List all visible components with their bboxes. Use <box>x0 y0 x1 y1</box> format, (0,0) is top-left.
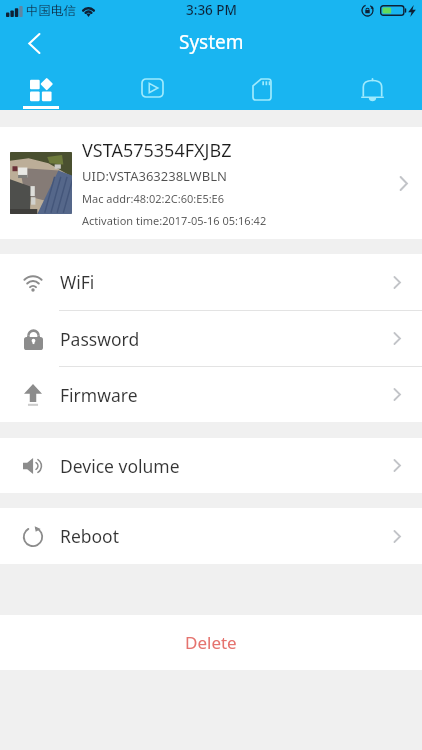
button[interactable]: WiFi <box>0 254 422 310</box>
staticText: WiFi <box>60 270 95 294</box>
button[interactable]: Delete <box>0 615 422 670</box>
staticText: UID:VSTA363238LWBLN <box>82 167 227 185</box>
button[interactable]: Reboot <box>0 508 422 564</box>
staticText: System <box>179 29 244 55</box>
staticText: Mac addr:48:02:2C:60:E5:E6 <box>82 191 225 206</box>
staticText: Password <box>60 327 140 351</box>
button[interactable]: SD card <box>221 64 303 110</box>
staticText: 中国电信 <box>26 3 76 19</box>
button[interactable]: Videos <box>111 64 193 110</box>
staticText: Device volume <box>60 454 180 478</box>
staticText: Firmware <box>60 383 138 407</box>
button[interactable]: VSTA575354FXJBZ <box>0 127 422 239</box>
button[interactable]: Back <box>14 23 54 63</box>
staticText: Activation time:2017-05-16 05:16:42 <box>82 213 267 228</box>
button[interactable]: Device volume <box>0 438 422 493</box>
button[interactable]: Firmware <box>0 367 422 422</box>
button[interactable]: Alerts <box>331 64 413 110</box>
staticText: Reboot <box>60 524 120 548</box>
staticText: Delete <box>185 631 237 654</box>
button[interactable]: Password <box>0 311 422 366</box>
staticText: VSTA575354FXJBZ <box>82 138 232 163</box>
button[interactable]: Device list <box>0 64 82 110</box>
staticText: 3:36 PM <box>186 1 237 19</box>
